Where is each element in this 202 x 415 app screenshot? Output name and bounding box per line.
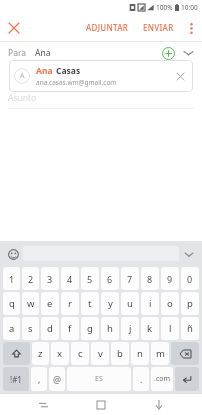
button[interactable]: v: [91, 342, 109, 365]
button[interactable]: Expandir: [178, 43, 198, 63]
staticText: Ana: [36, 65, 53, 77]
staticText: w: [27, 297, 35, 310]
button[interactable]: g: [81, 317, 99, 340]
staticText: ADJUNTAR: [86, 22, 129, 33]
button[interactable]: t: [81, 292, 99, 315]
button[interactable]: n: [131, 342, 149, 365]
staticText: 2: [28, 273, 34, 285]
staticText: 8: [147, 273, 153, 285]
button[interactable]: p: [181, 292, 199, 315]
button[interactable]: q: [3, 292, 20, 315]
staticText: ES: [95, 374, 103, 384]
staticText: 6: [107, 273, 113, 285]
staticText: s: [28, 322, 33, 335]
button[interactable]: k: [141, 317, 159, 340]
button[interactable]: f: [61, 317, 79, 340]
staticText: 9: [167, 273, 173, 285]
button[interactable]: Recientes: [28, 394, 58, 415]
button[interactable]: ENVIAR: [139, 17, 178, 38]
button[interactable]: ES: [67, 367, 131, 391]
button[interactable]: 1: [3, 267, 20, 290]
staticText: v: [98, 347, 103, 360]
button[interactable]: l: [161, 317, 179, 340]
staticText: 4: [67, 273, 73, 285]
button[interactable]: Mayúsculas: [3, 342, 30, 365]
button[interactable]: x: [51, 342, 69, 365]
staticText: !#1: [10, 374, 22, 385]
staticText: ñ: [187, 322, 193, 335]
staticText: ana.casas.wm@gmail.com: [36, 78, 117, 87]
staticText: t: [88, 297, 92, 310]
staticText: 0: [187, 273, 193, 285]
button[interactable]: 3: [41, 267, 59, 290]
staticText: Casas: [56, 65, 81, 77]
staticText: a: [9, 322, 15, 335]
button[interactable]: ADJUNTAR: [82, 17, 133, 38]
button[interactable]: 6: [101, 267, 119, 290]
button[interactable]: 7: [121, 267, 139, 290]
button[interactable]: Atrás: [144, 394, 174, 415]
button[interactable]: 5: [81, 267, 99, 290]
button[interactable]: j: [121, 317, 139, 340]
button[interactable]: .: [133, 367, 149, 391]
button[interactable]: Borrar: [171, 342, 199, 365]
staticText: 5: [87, 273, 93, 285]
staticText: 10:00: [181, 3, 198, 12]
button[interactable]: h: [101, 317, 119, 340]
staticText: ,: [38, 373, 41, 385]
button[interactable]: Añadir contacto: [158, 43, 178, 63]
staticText: 7: [127, 273, 133, 285]
button[interactable]: e: [41, 292, 59, 315]
staticText: l: [169, 322, 172, 335]
button[interactable]: .com: [151, 367, 173, 391]
staticText: 100%: [156, 3, 173, 12]
button[interactable]: 2: [22, 267, 39, 290]
staticText: o: [167, 297, 173, 310]
button[interactable]: o: [161, 292, 179, 315]
staticText: Asunto: [8, 92, 37, 104]
button[interactable]: d: [41, 317, 59, 340]
button[interactable]: i: [141, 292, 159, 315]
button[interactable]: m: [151, 342, 169, 365]
button[interactable]: c: [71, 342, 89, 365]
button[interactable]: a: [3, 317, 20, 340]
button[interactable]: w: [22, 292, 39, 315]
button[interactable]: y: [101, 292, 119, 315]
button[interactable]: b: [111, 342, 129, 365]
staticText: .: [140, 373, 143, 385]
button[interactable]: A: [9, 60, 193, 92]
button[interactable]: Quitar sugerencia: [172, 68, 188, 84]
button[interactable]: ñ: [181, 317, 199, 340]
button[interactable]: Intro: [175, 367, 199, 391]
staticText: h: [107, 322, 113, 335]
staticText: ENVIAR: [143, 22, 174, 33]
button[interactable]: r: [61, 292, 79, 315]
button[interactable]: !#1: [3, 367, 29, 391]
button[interactable]: u: [121, 292, 139, 315]
button[interactable]: Ocultar sugerencias: [179, 244, 199, 264]
button[interactable]: 0: [181, 267, 199, 290]
staticText: i: [149, 297, 152, 310]
button[interactable]: s: [22, 317, 39, 340]
staticText: A: [20, 71, 25, 81]
button[interactable]: @: [49, 367, 65, 391]
button[interactable]: 8: [141, 267, 159, 290]
staticText: 3: [47, 273, 53, 285]
button[interactable]: z: [32, 342, 49, 365]
button[interactable]: Más opciones: [180, 17, 202, 39]
staticText: x: [57, 347, 63, 360]
button[interactable]: 4: [61, 267, 79, 290]
staticText: c: [78, 347, 83, 360]
button[interactable]: Emojis: [3, 244, 23, 264]
staticText: f: [68, 322, 72, 335]
button[interactable]: Cerrar: [0, 14, 27, 41]
button[interactable]: ,: [31, 367, 47, 391]
button[interactable]: Inicio: [86, 394, 116, 415]
staticText: .com: [154, 374, 171, 384]
staticText: e: [47, 297, 53, 310]
staticText: m: [156, 347, 165, 360]
staticText: 1: [9, 273, 15, 285]
staticText: @: [53, 373, 62, 385]
button[interactable]: 9: [161, 267, 179, 290]
